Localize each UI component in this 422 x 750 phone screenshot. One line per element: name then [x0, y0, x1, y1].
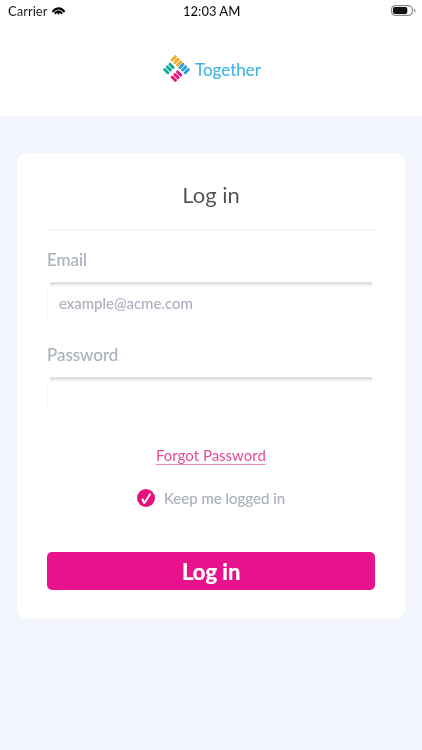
staticText: Password: [47, 344, 119, 364]
button[interactable]: [47, 377, 375, 419]
other: Battery: [391, 5, 416, 16]
other: Keep me logged in: [137, 489, 155, 507]
button[interactable]: Log in: [47, 552, 375, 590]
staticText: Log in: [182, 558, 241, 584]
staticText: Together: [195, 59, 261, 79]
staticText: Keep me logged in: [164, 489, 286, 507]
staticText: Carrier: [8, 3, 48, 19]
staticText: Email: [47, 249, 88, 269]
staticText: 12:03 AM: [183, 3, 241, 19]
button[interactable]: Forgot Password: [156, 446, 266, 464]
button[interactable]: Keep me logged in: [137, 489, 286, 507]
staticText: Log in: [17, 181, 405, 207]
other: Together logo: [162, 54, 191, 83]
button[interactable]: example@acme.com: [47, 282, 375, 324]
other: Wi-Fi: [51, 4, 66, 15]
staticText: example@acme.com: [59, 294, 193, 312]
